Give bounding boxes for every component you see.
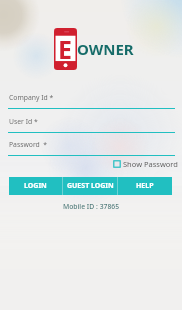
staticText: Show Password [123,159,178,169]
staticText: User Id * [9,117,38,126]
button[interactable]: LOGIN [9,177,62,195]
staticText: LOGIN [24,181,47,191]
staticText: GUEST LOGIN [67,181,114,191]
staticText: E [58,32,73,66]
staticText: OWNER [77,39,134,59]
button[interactable]: HELP [118,177,172,195]
staticText: Company Id * [9,93,54,102]
staticText: HELP [136,181,154,191]
button[interactable]: GUEST LOGIN [63,177,117,195]
staticText: Mobile ID : 37865 [0,202,182,211]
button[interactable]: Show Password [113,159,178,169]
staticText: Password * [9,140,48,149]
